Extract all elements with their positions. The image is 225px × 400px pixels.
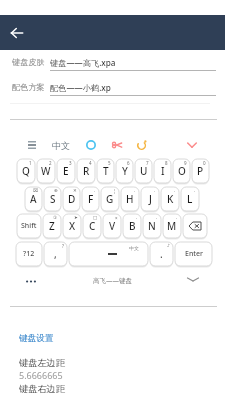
staticText: 5.6666665	[19, 369, 63, 381]
button[interactable]: ×	[103, 214, 121, 238]
button[interactable]: More options	[26, 274, 40, 288]
staticText: 键盘——高飞.xpa	[50, 57, 116, 68]
staticText: Q	[22, 164, 30, 178]
button[interactable]: Menu	[24, 137, 40, 153]
button[interactable]: ·	[141, 187, 159, 211]
staticText: 2	[49, 160, 52, 166]
staticText: ·	[94, 188, 96, 194]
staticText: N	[148, 219, 156, 233]
staticText: Y	[122, 164, 128, 178]
staticText: ·	[154, 188, 156, 194]
staticText: 键盘设置	[19, 333, 54, 344]
button[interactable]: ·	[161, 187, 179, 211]
staticText: ?	[62, 243, 64, 249]
button[interactable]: 6	[116, 159, 133, 183]
staticText: ,	[54, 247, 57, 261]
staticText: I	[161, 164, 165, 178]
staticText: ·	[176, 215, 178, 221]
staticText: K	[167, 192, 174, 206]
staticText: 键盘右边距	[19, 383, 65, 395]
staticText: □	[93, 215, 98, 220]
button[interactable]: 3	[57, 159, 75, 183]
button[interactable]: ⊕	[44, 187, 61, 211]
staticText: T	[103, 164, 109, 178]
button[interactable]: ·	[123, 214, 141, 238]
button[interactable]: ?	[44, 242, 67, 266]
button[interactable]: 2	[37, 159, 55, 183]
staticText: ×	[115, 215, 118, 221]
button[interactable]: Enter	[175, 242, 212, 266]
staticText: 0	[203, 160, 206, 166]
staticText: 3	[69, 160, 72, 166]
staticText: 1	[29, 160, 32, 166]
button[interactable]: ①	[43, 214, 61, 238]
button[interactable]: ·	[181, 187, 199, 211]
button[interactable]: Shift	[17, 214, 41, 238]
staticText: A	[30, 192, 37, 206]
staticText: 中文	[129, 245, 139, 251]
staticText: 键盘左边距	[19, 357, 65, 369]
button[interactable]: ✕	[63, 187, 80, 211]
button[interactable]: 1	[17, 159, 35, 183]
staticText: V	[109, 219, 116, 233]
staticText: ➤	[74, 215, 78, 220]
staticText: ¦	[113, 188, 116, 194]
button[interactable]: ·	[143, 214, 161, 238]
staticText: ·	[156, 215, 158, 221]
button[interactable]: Hide keyboard	[186, 272, 200, 286]
staticText: 配色——小鹤.xp	[50, 82, 111, 93]
button[interactable]: 中文	[52, 140, 70, 151]
staticText: ♪	[167, 243, 170, 248]
button[interactable]: Night mode	[134, 137, 150, 153]
staticText: S	[50, 192, 56, 206]
button[interactable]: Emoji	[83, 137, 99, 153]
staticText: C	[89, 219, 96, 233]
staticText: W	[41, 164, 51, 178]
staticText: 4	[89, 160, 92, 166]
staticText: ·	[174, 188, 176, 194]
staticText: ①	[53, 215, 58, 220]
staticText: Z	[49, 219, 55, 233]
staticText: Enter	[185, 249, 203, 259]
button[interactable]: ¦	[101, 187, 119, 211]
button[interactable]: ·	[121, 187, 139, 211]
staticText: O	[178, 164, 186, 178]
button[interactable]: 0	[192, 159, 209, 183]
button[interactable]: ·	[82, 187, 99, 211]
staticText: ·	[134, 188, 136, 194]
button[interactable]: ·	[163, 214, 181, 238]
button[interactable]: 8	[154, 159, 171, 183]
staticText: R	[83, 164, 90, 178]
staticText: G	[106, 192, 114, 206]
button[interactable]: 7	[135, 159, 152, 183]
staticText: X	[69, 219, 76, 233]
staticText: ·	[194, 188, 196, 194]
button[interactable]: 9	[173, 159, 190, 183]
staticText: U	[140, 164, 148, 178]
staticText: E	[63, 164, 69, 178]
staticText: D	[68, 192, 76, 206]
button[interactable]: 键盘设置	[19, 333, 54, 344]
staticText: M	[167, 219, 177, 233]
button[interactable]: □	[83, 214, 101, 238]
staticText: Shift	[21, 221, 37, 231]
button[interactable]: ⌧	[25, 187, 42, 211]
button[interactable]: ➤	[63, 214, 81, 238]
button[interactable]: 中文	[69, 242, 148, 266]
button[interactable]: 5	[97, 159, 114, 183]
staticText: ⌧	[33, 188, 39, 193]
button[interactable]: Back	[6, 22, 28, 44]
button[interactable]	[183, 214, 207, 238]
staticText: 键盘皮肤	[12, 57, 45, 67]
staticText: 高飞——键盘	[93, 276, 132, 285]
button[interactable]: Cut	[109, 137, 125, 153]
button[interactable]: ♪	[150, 242, 173, 266]
button[interactable]: ?12	[16, 242, 42, 266]
staticText: ·	[136, 215, 138, 221]
button[interactable]: 4	[77, 159, 95, 183]
staticText: ⊕	[54, 188, 58, 193]
staticText: L	[187, 192, 193, 206]
staticText: P	[197, 164, 204, 178]
staticText: B	[129, 219, 136, 233]
button[interactable]: Collapse keyboard	[184, 137, 200, 153]
